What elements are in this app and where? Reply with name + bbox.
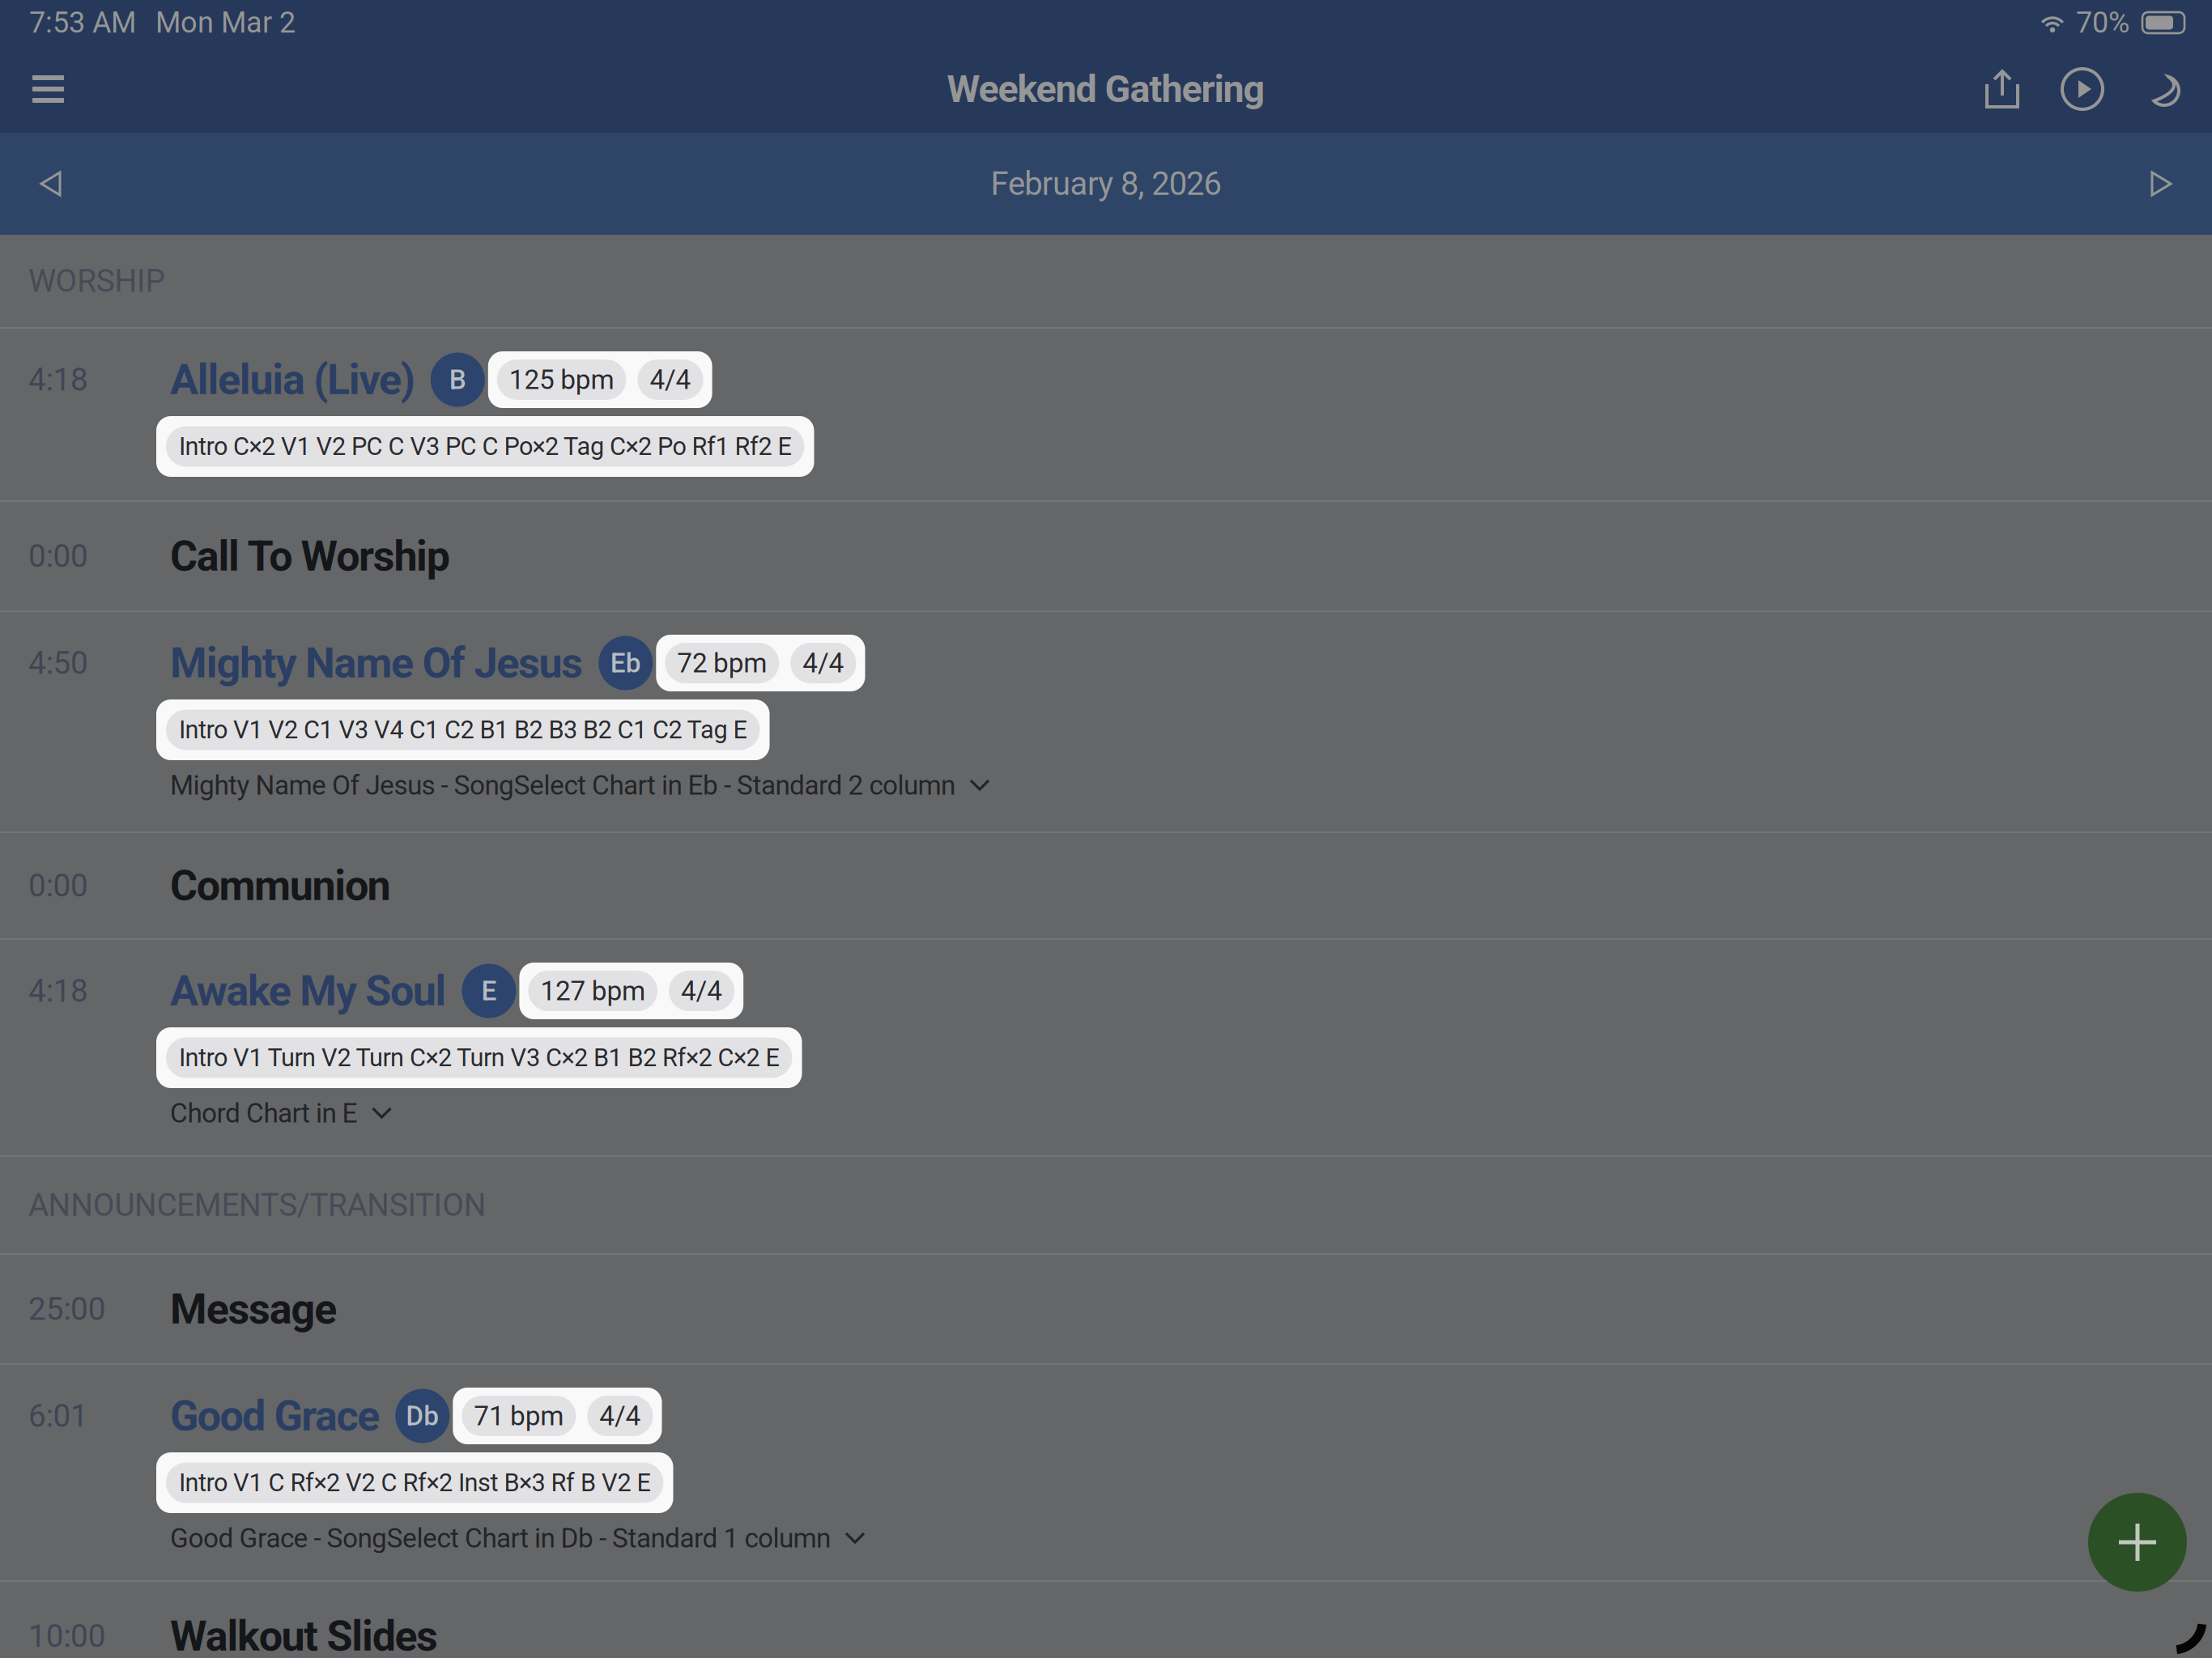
staticText: B [449,364,466,396]
staticText: 71 bpm [474,1400,564,1432]
staticText: 25:00 [28,1291,106,1327]
staticText: Mighty Name Of Jesus [170,638,583,688]
staticText: Intro V1 C Rf×2 V2 C Rf×2 Inst B×3 Rf B … [179,1468,651,1497]
staticText: 7:53 AM [29,6,136,40]
staticText: Eb [610,647,641,679]
button[interactable]: Previous service [15,151,87,217]
staticText: 0:00 [28,538,88,574]
staticText: Intro C×2 V1 V2 PC C V3 PC C Po×2 Tag C×… [179,432,791,461]
staticText: Call To Worship [170,531,450,581]
staticText: 70% [2076,6,2129,40]
staticText: Intro V1 Turn V2 Turn C×2 Turn V3 C×2 B1… [179,1043,779,1072]
staticText: 4/4 [599,1400,641,1432]
staticText: 4/4 [803,647,844,679]
staticText: Good Grace - SongSelect Chart in Db - St… [170,1522,831,1554]
button[interactable]: Add item [2088,1493,2187,1592]
staticText: February 8, 2026 [991,165,1221,203]
staticText: Intro V1 V2 C1 V3 V4 C1 C2 B1 B2 B3 B2 C… [179,715,747,744]
staticText: Communion [170,861,391,910]
staticText: Alleluia (Live) [170,355,415,404]
button[interactable]: 4:18 [0,329,2212,500]
staticText: 4:50 [28,645,88,681]
staticText: 4/4 [650,364,691,396]
button[interactable]: Dark mode [2123,69,2202,109]
staticText: 6:01 [28,1398,88,1434]
staticText: Walkout Slides [170,1611,438,1658]
staticText: E [481,975,497,1007]
staticText: Mighty Name Of Jesus - SongSelect Chart … [170,769,955,801]
button[interactable]: 10:00 [0,1582,2212,1658]
staticText: Mon Mar 2 [155,6,296,40]
staticText: 0:00 [28,867,88,904]
staticText: Good Grace [170,1391,380,1441]
staticText: 125 bpm [509,364,614,396]
staticText: Message [170,1284,337,1334]
button[interactable]: Play [2042,69,2123,109]
staticText: Chord Chart in E [170,1097,357,1129]
staticText: Awake My Soul [170,966,446,1016]
staticText: Weekend Gathering [947,67,1265,111]
staticText: 10:00 [28,1618,106,1654]
button[interactable]: 4:50 [0,612,2212,831]
button[interactable]: Share [1963,69,2042,109]
button[interactable]: 6:01 [0,1365,2212,1580]
staticText: 4:18 [28,973,88,1009]
staticText: WORSHIP [28,263,165,299]
staticText: ANNOUNCEMENTS/TRANSITION [28,1187,486,1223]
button[interactable]: 0:00 [0,502,2212,610]
staticText: 127 bpm [540,975,645,1007]
button[interactable]: 4:18 [0,940,2212,1155]
button[interactable]: 25:00 [0,1255,2212,1363]
button[interactable]: Menu [0,54,85,124]
staticText: Db [406,1400,439,1432]
staticText: 4/4 [681,975,722,1007]
button[interactable]: 0:00 [0,833,2212,938]
staticText: 72 bpm [677,647,767,679]
staticText: 4:18 [28,361,88,398]
button[interactable]: Next service [2125,151,2197,217]
